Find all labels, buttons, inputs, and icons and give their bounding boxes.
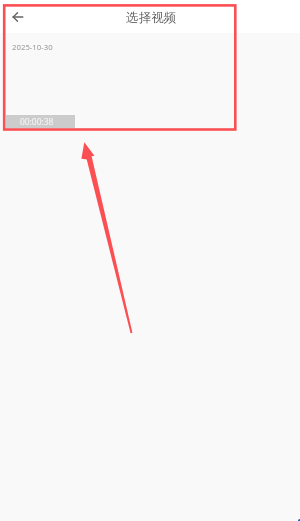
button[interactable]: 选择视频: [126, 10, 177, 26]
staticText: 2025-10-30: [12, 42, 53, 53]
button[interactable]: 00:00:38: [6, 115, 75, 128]
button[interactable]: Back: [6, 5, 30, 29]
staticText: 00:00:38: [20, 116, 54, 127]
